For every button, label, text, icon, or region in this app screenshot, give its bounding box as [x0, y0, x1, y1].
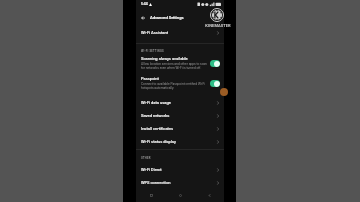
staticText: Install certificates	[141, 126, 174, 131]
staticText: Passpoint	[141, 76, 159, 81]
button[interactable]: Wi-Fi Direct	[136, 163, 224, 176]
button[interactable]: Install certificates	[136, 122, 224, 135]
button[interactable]: Wi-Fi Assistant	[136, 26, 224, 39]
staticText: Wi-Fi Assistant	[141, 30, 169, 35]
button[interactable]: Toggle	[210, 60, 220, 67]
staticText: for networks even when Wi-Fi is turned o…	[141, 66, 202, 70]
staticText: WI-FI SETTINGS	[141, 49, 164, 52]
staticText: OTHER	[141, 156, 151, 159]
staticText: Connect to available Passpoint certified…	[141, 82, 205, 86]
button[interactable]: Toggle	[210, 80, 220, 87]
button[interactable]: Scanning always available	[136, 53, 224, 73]
staticText: KINEMASTER	[205, 23, 231, 28]
button[interactable]: Home	[166, 188, 195, 202]
button[interactable]: Wi-Fi status display	[136, 135, 224, 148]
button[interactable]: Back	[137, 12, 148, 23]
button[interactable]: Passpoint	[136, 73, 224, 93]
button[interactable]: Saved networks	[136, 109, 224, 122]
button[interactable]: Back	[195, 188, 224, 202]
button[interactable]: Wi-Fi data usage	[136, 96, 224, 109]
staticText: WPS connection	[141, 180, 171, 185]
staticText: hotspots automatically.	[141, 86, 175, 90]
staticText: Saved networks	[141, 113, 170, 118]
staticText: Allow location services and other apps t…	[141, 62, 207, 66]
staticText: Scanning always available	[141, 56, 188, 61]
staticText: Wi-Fi status display	[141, 139, 176, 144]
staticText: Advanced Settings	[150, 15, 184, 20]
staticText: 5:44	[141, 2, 148, 6]
staticText: Wi-Fi Direct	[141, 167, 162, 172]
button[interactable]: WPS connection	[136, 176, 224, 189]
staticText: Wi-Fi data usage	[141, 100, 171, 105]
button[interactable]: Recents	[136, 188, 166, 202]
